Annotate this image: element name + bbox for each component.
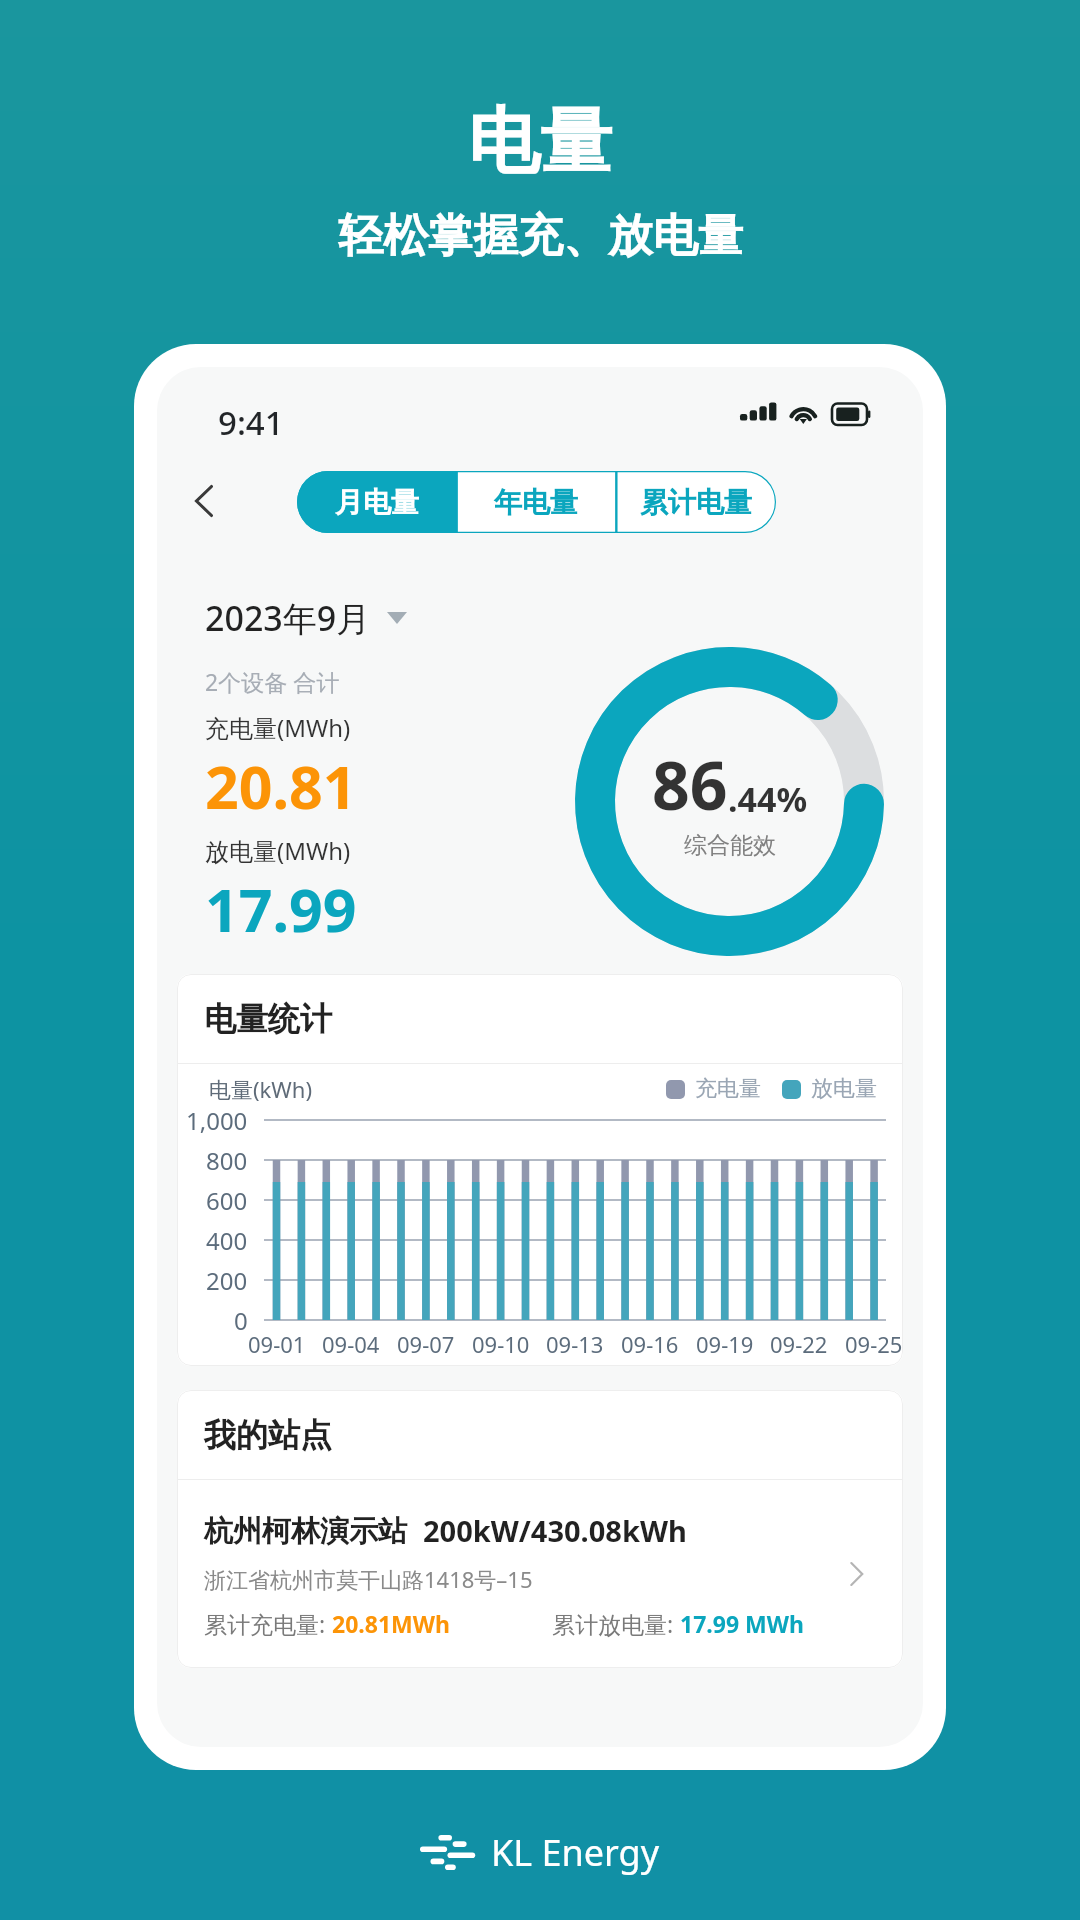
staticText: 杭州柯林演示站 [204, 1513, 407, 1550]
staticText: 放电量 [811, 1075, 877, 1103]
staticText: 09-13 [546, 1329, 604, 1359]
staticText: 累计电量 [640, 485, 752, 520]
staticText: 电量(kWh) [209, 1074, 313, 1104]
staticText: 充电量(MWh) [205, 711, 351, 744]
staticText: 9:41 [218, 400, 284, 445]
staticText: 17.99 [205, 869, 357, 949]
staticText: 200 [206, 1264, 248, 1297]
staticText: 200kW/430.08kWh [423, 1511, 687, 1550]
staticText: .44% [728, 776, 808, 822]
staticText: 累计放电量: [552, 1608, 680, 1639]
staticText: 09-22 [770, 1329, 828, 1359]
staticText: 电量 [468, 97, 612, 188]
staticText: 综合能效 [684, 831, 776, 860]
button[interactable]: 年电量 [456, 471, 616, 533]
staticText: 09-19 [696, 1329, 754, 1359]
staticText: 09-25 [845, 1329, 903, 1359]
staticText: 累计充电量: [204, 1608, 332, 1639]
staticText: 20.81 [205, 746, 357, 826]
button[interactable]: 杭州柯林演示站 [177, 1480, 903, 1668]
staticText: 17.99 MWh [680, 1608, 804, 1639]
staticText: KL Energy [491, 1828, 660, 1877]
staticText: 轻松掌握充、放电量 [338, 208, 743, 265]
staticText: 400 [206, 1224, 248, 1257]
staticText: 09-07 [397, 1329, 455, 1359]
staticText: 20.81MWh [332, 1608, 450, 1639]
staticText: 09-10 [472, 1329, 530, 1359]
button[interactable]: Back [164, 461, 244, 541]
staticText: 浙江省杭州市莫干山路1418号–15 [204, 1564, 533, 1594]
staticText: 放电量(MWh) [205, 834, 351, 867]
staticText: 我的站点 [204, 1415, 332, 1455]
staticText: 09-04 [322, 1329, 380, 1359]
staticText: 86 [652, 739, 728, 829]
staticText: 800 [206, 1144, 248, 1177]
staticText: 2个设备 合计 [205, 666, 340, 697]
staticText: 年电量 [494, 485, 578, 520]
staticText: 600 [206, 1184, 248, 1217]
staticText: 0 [234, 1304, 248, 1337]
staticText: 1,000 [186, 1104, 248, 1137]
staticText: 电量统计 [204, 999, 332, 1039]
other: Open station [843, 1561, 869, 1587]
button[interactable]: 累计电量 [616, 471, 776, 533]
staticText: 09-16 [621, 1329, 679, 1359]
staticText: 09-01 [248, 1329, 306, 1359]
staticText: 月电量 [335, 485, 419, 520]
button[interactable]: 月电量 [297, 471, 456, 533]
staticText: 2023年9月 [205, 595, 371, 641]
button[interactable]: 2023年9月 [205, 595, 407, 641]
staticText: 充电量 [695, 1075, 761, 1103]
